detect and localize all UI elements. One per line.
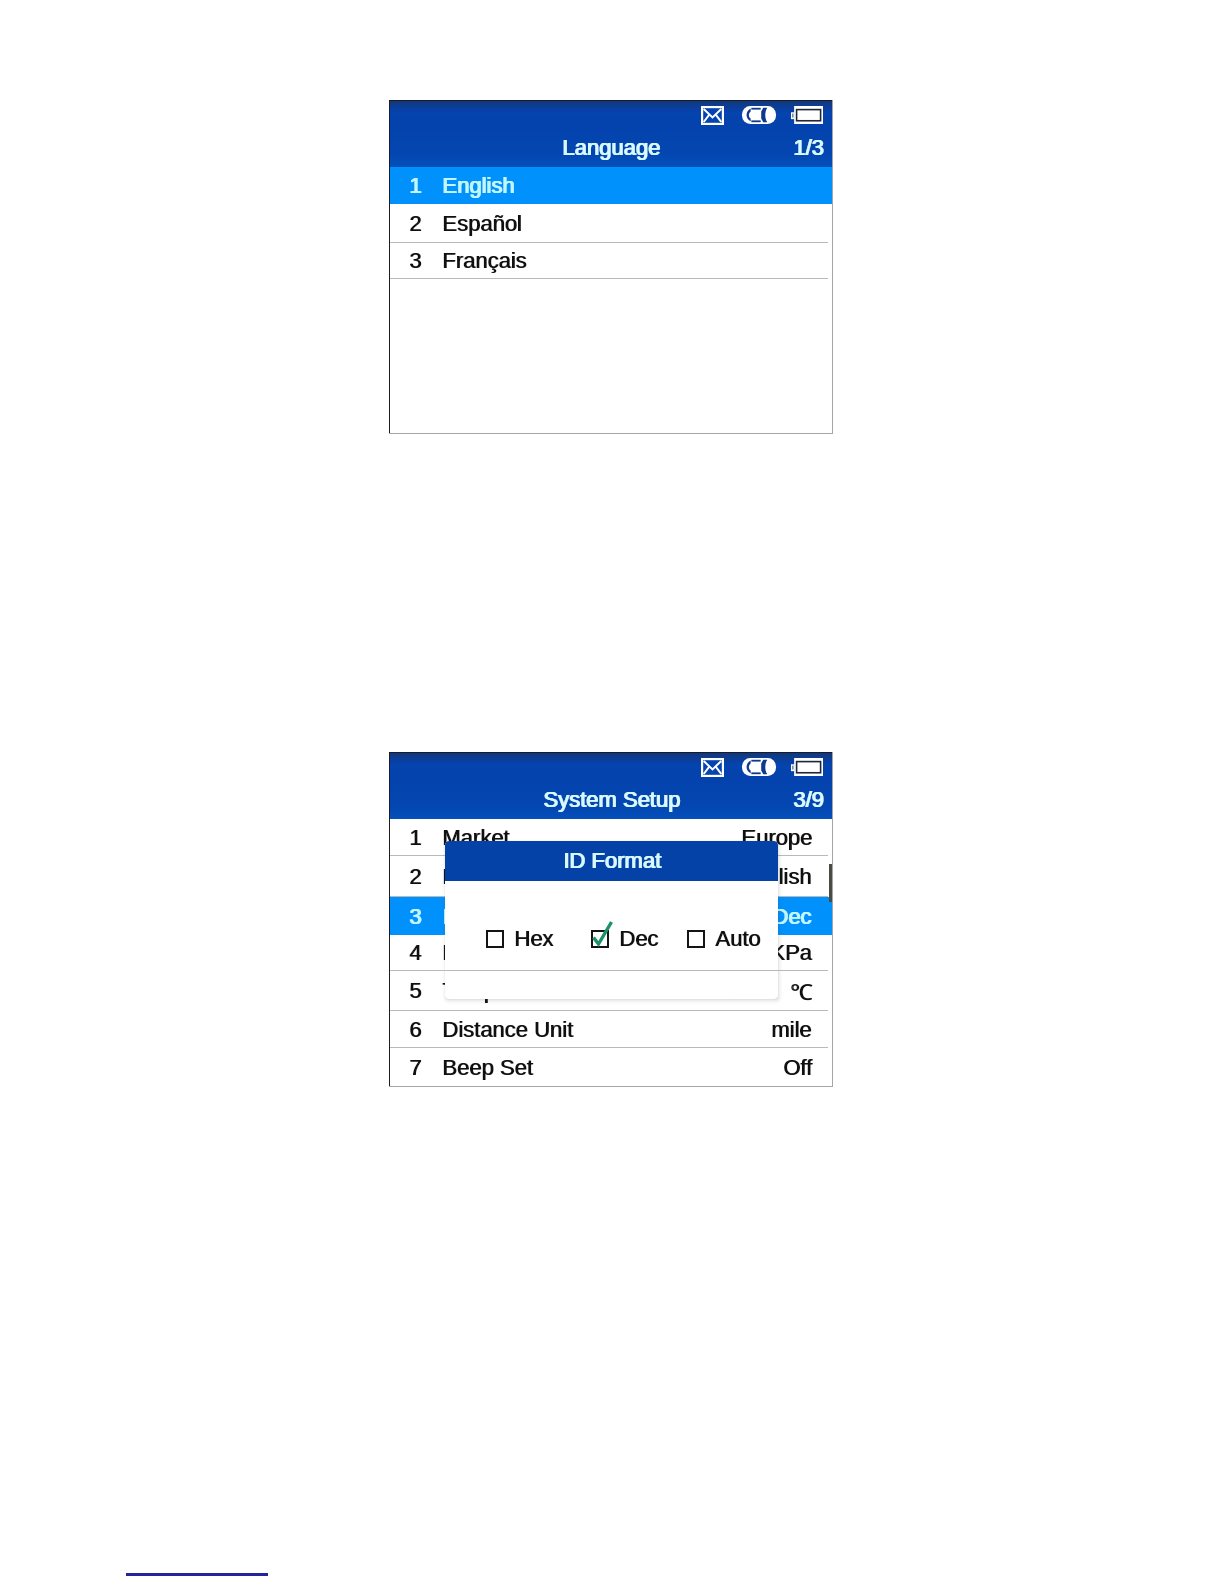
staticText: English [442,173,515,198]
staticText: Hex [514,926,554,951]
staticText: ID Format [563,848,661,873]
other: Vehicle connection [742,758,776,776]
staticText: KPa [770,940,812,965]
other: Vehicle connection [742,106,776,124]
staticText: Dec [619,926,659,951]
button[interactable]: 2 [390,204,832,242]
button[interactable]: 3 [390,243,832,278]
button[interactable]: 2 [390,856,832,896]
other: Messages [701,758,724,777]
staticText: 2 [410,211,423,236]
staticText: 5 [410,978,423,1003]
staticText: Off [784,1055,813,1080]
staticText: 1 [409,825,422,850]
staticText: 3 [409,904,422,929]
staticText: Temperature [443,978,567,1003]
button[interactable]: 7 [390,1048,832,1086]
staticText: Français [442,248,527,273]
staticText: Distance Unit [442,1017,573,1042]
button[interactable]: 1 [390,167,832,204]
staticText: 3 [410,248,423,273]
staticText: 7 [410,1055,423,1080]
staticText: Pressure Unit [443,940,577,965]
staticText: 6 [409,1017,422,1042]
staticText: Distance Unit [443,1017,574,1042]
staticText: English [443,173,516,198]
staticText: 3 [409,248,422,273]
staticText: Market [442,825,510,850]
staticText: Dec [772,904,812,929]
button[interactable]: 6 [390,1011,832,1047]
other: Battery [791,758,823,776]
staticText: Beep Set [442,1055,533,1080]
staticText: Hex [515,926,555,951]
button[interactable]: Hex [486,924,554,954]
staticText: Français [443,248,528,273]
staticText: Español [443,211,523,236]
staticText: ID Format [564,848,662,873]
staticText: 4 [409,940,422,965]
staticText: Market [443,825,511,850]
button[interactable]: 1 [390,819,832,855]
staticText: 2 [410,864,423,889]
button[interactable]: Auto [687,924,761,954]
staticText: KPa [771,940,813,965]
staticText: Language [442,864,540,889]
staticText: 2 [409,864,422,889]
staticText: Auto [716,926,762,951]
staticText: Language [563,135,661,160]
staticText: English [739,864,812,889]
staticText: Español [442,211,522,236]
staticText: Language [562,135,660,160]
staticText: ℃ [791,976,813,1006]
staticText: 3/9 [794,787,825,812]
staticText: Dec [773,904,813,929]
staticText: 4 [410,940,423,965]
staticText: 3 [410,904,423,929]
staticText: Off [783,1055,812,1080]
staticText: 3/9 [793,787,824,812]
staticText: mile [771,1017,812,1042]
staticText: Beep Set [443,1055,534,1080]
button[interactable]: 3 [390,897,832,935]
staticText: ID Format [442,904,540,929]
staticText: Europe [741,825,812,850]
staticText: 1 [410,173,423,198]
staticText: 1/3 [794,135,825,160]
other: Battery [791,106,823,124]
button[interactable]: Dec [591,924,659,954]
staticText: Auto [715,926,761,951]
staticText: mile [772,1017,813,1042]
staticText: Language [443,864,541,889]
staticText: 5 [409,978,422,1003]
other: Messages [701,106,724,125]
staticText: 1/3 [793,135,824,160]
staticText: 6 [410,1017,423,1042]
button[interactable]: 4 [390,935,832,970]
staticText: ID Format [443,904,541,929]
staticText: English [740,864,813,889]
staticText: 2 [409,211,422,236]
button[interactable]: 5 [390,971,832,1010]
staticText: Temperature [442,978,566,1003]
staticText: System Setup [544,787,681,812]
staticText: System Setup [543,787,680,812]
staticText: Pressure Unit [442,940,576,965]
staticText: 1 [410,825,423,850]
staticText: Dec [620,926,660,951]
staticText: Europe [742,825,813,850]
staticText: ℃ [790,976,812,1006]
staticText: 1 [409,173,422,198]
staticText: 7 [409,1055,422,1080]
